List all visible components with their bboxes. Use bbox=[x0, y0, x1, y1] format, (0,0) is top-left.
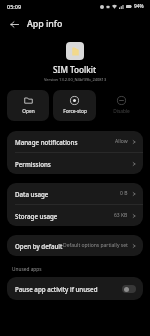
button[interactable]: Storage usage bbox=[7, 205, 143, 226]
staticText: Default options partially set bbox=[63, 242, 128, 249]
staticText: Version 13.2.00_N4bf39b_240813 bbox=[44, 77, 107, 82]
button[interactable]: Permissions bbox=[7, 153, 143, 174]
button[interactable]: Back bbox=[5, 15, 23, 33]
staticText: 94% bbox=[134, 3, 144, 10]
staticText: 05:09 bbox=[7, 3, 22, 10]
button[interactable]: Data usage bbox=[7, 183, 143, 204]
button[interactable]: Force-stop bbox=[53, 90, 96, 121]
staticText: Storage usage bbox=[15, 212, 114, 220]
staticText: Disable bbox=[113, 108, 130, 115]
staticText: SIM Toolkit bbox=[53, 64, 97, 75]
staticText: Permissions bbox=[15, 160, 131, 168]
staticText: Manage notifications bbox=[15, 138, 115, 146]
staticText: 0 B bbox=[120, 190, 128, 197]
staticText: Force-stop bbox=[63, 108, 87, 115]
staticText: Open by default bbox=[15, 242, 63, 250]
staticText: Unused apps bbox=[12, 266, 42, 273]
staticText: Open bbox=[22, 108, 35, 115]
staticText: Data usage bbox=[15, 190, 120, 198]
staticText: 63 KB bbox=[114, 212, 128, 219]
button[interactable]: Open by default bbox=[7, 235, 143, 256]
staticText: Allow bbox=[115, 138, 128, 145]
staticText: App info bbox=[27, 18, 63, 30]
button[interactable]: Manage notifications bbox=[7, 131, 143, 152]
staticText: Pause app activity if unused bbox=[15, 285, 122, 293]
button[interactable]: Disable bbox=[100, 90, 143, 121]
button[interactable]: Pause app activity if unused bbox=[7, 277, 143, 300]
button[interactable]: Open bbox=[7, 90, 49, 121]
